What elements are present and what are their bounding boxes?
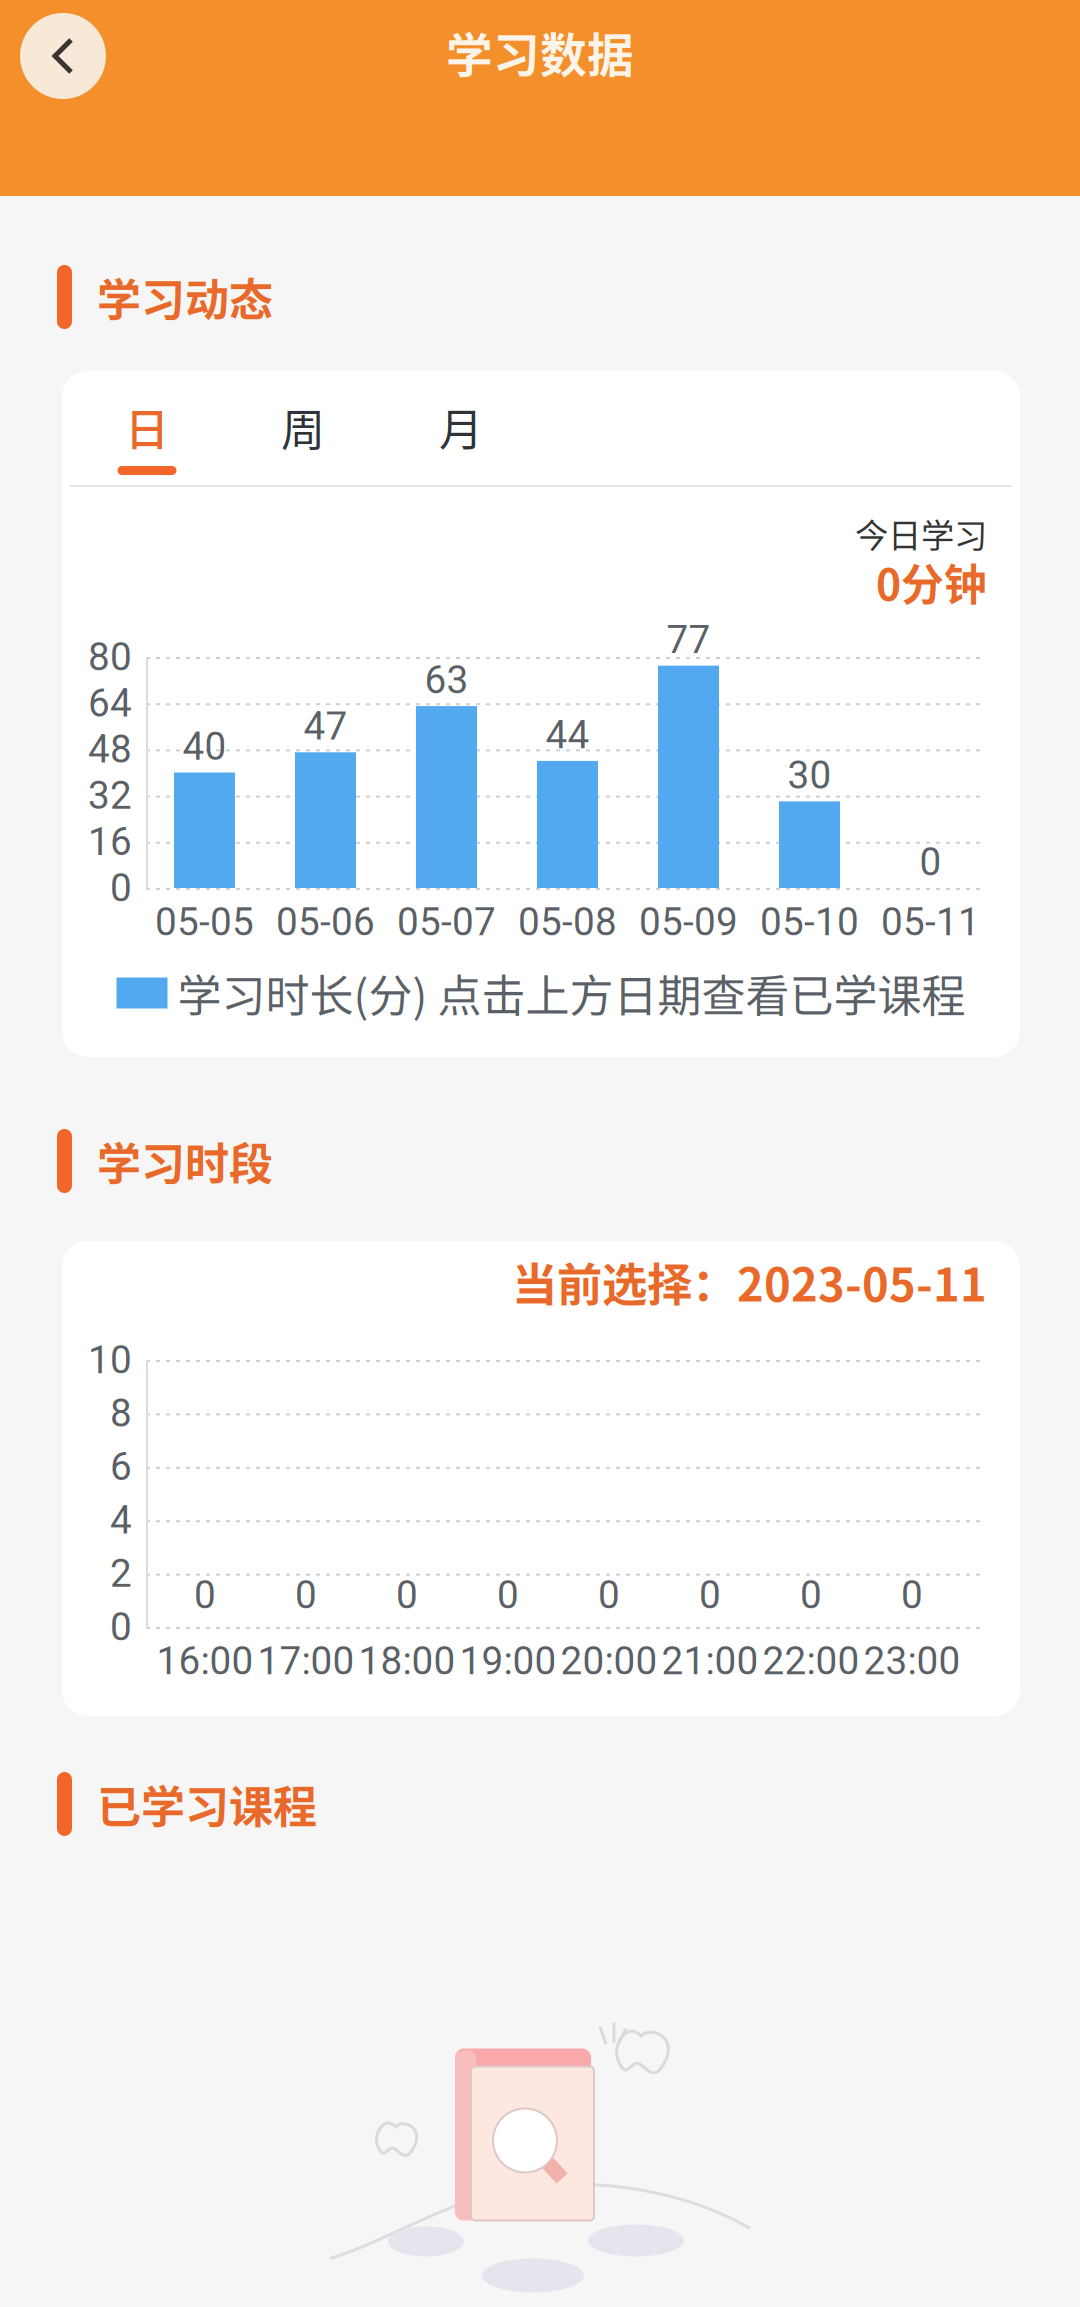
staticText: 0 — [110, 865, 132, 911]
staticText: 学习数据 — [446, 18, 634, 86]
staticText: 周 — [281, 395, 325, 459]
staticText: 20:00 — [560, 1638, 657, 1684]
staticText: 16 — [88, 819, 132, 864]
staticText: 0 — [396, 1572, 418, 1618]
staticText: 0 — [699, 1572, 721, 1618]
staticText: 0 — [295, 1572, 317, 1618]
staticText: 0 — [497, 1572, 519, 1618]
staticText: 44 — [545, 712, 589, 758]
staticText: 22:00 — [762, 1638, 859, 1684]
staticText: 77 — [666, 617, 710, 662]
staticText: 64 — [88, 680, 132, 726]
button[interactable]: 日 — [62, 371, 232, 483]
staticText: 17:00 — [257, 1638, 354, 1684]
staticText: 05-10 — [760, 899, 859, 945]
staticText: 21:00 — [661, 1638, 758, 1684]
staticText: 47 — [303, 704, 347, 749]
staticText: 学习动态 — [97, 265, 273, 329]
staticText: 30 — [787, 753, 831, 798]
staticText: 40 — [182, 724, 226, 769]
staticText: 今日学习 — [855, 509, 987, 557]
staticText: 0 — [194, 1572, 216, 1618]
staticText: 16:00 — [156, 1638, 253, 1684]
staticText: 05-11 — [881, 899, 980, 945]
button[interactable]: Back — [20, 13, 106, 99]
staticText: 日 — [125, 395, 169, 459]
staticText: 23:00 — [863, 1638, 960, 1684]
staticText: 学习时长(分) 点击上方日期查看已学课程 — [177, 961, 965, 1025]
staticText: 学习时段 — [97, 1129, 273, 1193]
staticText: 当前选择：2023-05-11 — [512, 1249, 987, 1315]
staticText: 05-06 — [276, 899, 375, 945]
staticText: 0 — [919, 839, 941, 885]
staticText: 6 — [110, 1444, 132, 1489]
staticText: 80 — [88, 634, 132, 680]
staticText: 19:00 — [459, 1638, 556, 1684]
staticText: 0 — [110, 1604, 132, 1650]
staticText: 63 — [424, 657, 468, 703]
staticText: 0 — [598, 1572, 620, 1618]
staticText: 05-05 — [155, 899, 254, 945]
staticText: 05-07 — [397, 899, 496, 945]
staticText: 05-09 — [639, 899, 738, 945]
staticText: 0 — [901, 1572, 923, 1618]
staticText: 48 — [88, 727, 132, 772]
button[interactable]: 月 — [374, 371, 548, 483]
staticText: 10 — [88, 1337, 132, 1383]
staticText: 32 — [88, 773, 132, 818]
staticText: 0 — [800, 1572, 822, 1618]
staticText: 月 — [439, 395, 483, 459]
button[interactable]: 周 — [232, 371, 374, 483]
staticText: 8 — [110, 1391, 132, 1436]
staticText: 05-08 — [518, 899, 617, 945]
staticText: 0分钟 — [876, 551, 987, 613]
staticText: 18:00 — [358, 1638, 455, 1684]
staticText: 4 — [110, 1497, 132, 1543]
staticText: 2 — [110, 1551, 132, 1596]
staticText: 已学习课程 — [97, 1772, 317, 1836]
